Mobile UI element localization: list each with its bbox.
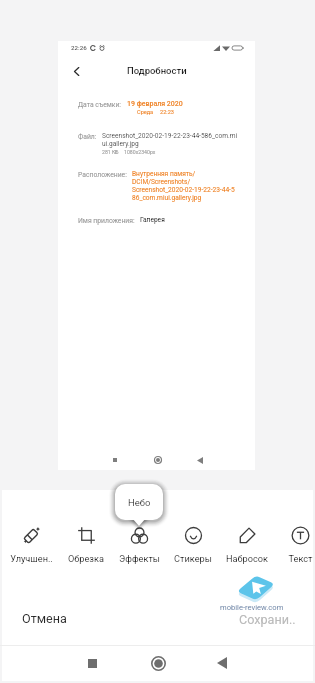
button[interactable]: Сохрани..	[229, 606, 306, 633]
button[interactable]: Назад	[193, 453, 207, 467]
button[interactable]: Обрезка	[60, 526, 112, 564]
staticText: Эффекты	[119, 553, 160, 564]
button[interactable]: Эффекты	[113, 526, 165, 564]
staticText: Файл:	[78, 133, 97, 141]
staticText: Галерея	[140, 216, 165, 224]
button[interactable]: Небо	[115, 484, 163, 520]
staticText: Внутренняя память/ DCIM/Screenshots/ Scr…	[132, 170, 238, 202]
staticText: Среда	[137, 109, 154, 116]
staticText: Имя приложения:	[78, 217, 135, 225]
staticText: 22:23	[160, 109, 174, 116]
button[interactable]: Назад	[67, 62, 86, 81]
button[interactable]: Набросок	[221, 526, 273, 564]
staticText: Отмена	[22, 611, 67, 626]
staticText: 19 февраля 2020	[127, 100, 183, 108]
staticText: mobile-review.com	[220, 603, 284, 612]
button[interactable]: Дата съемки:	[78, 101, 238, 116]
button[interactable]: Домой	[151, 453, 165, 467]
staticText: 22:26	[71, 44, 87, 51]
staticText: Подробности	[127, 65, 187, 76]
staticText: Screenshot_2020-02-19-22-23-44-586_com.m…	[102, 132, 238, 148]
button[interactable]: Улучшен..	[5, 526, 57, 564]
staticText: 1080x2340px	[124, 149, 156, 155]
button[interactable]: Недавние приложения	[76, 647, 108, 679]
button[interactable]: Текст	[274, 526, 315, 564]
staticText: Сохрани..	[239, 612, 296, 627]
staticText: Текст	[288, 553, 313, 564]
button[interactable]: Назад	[206, 647, 238, 679]
staticText: 281 КБ	[102, 149, 119, 155]
staticText: Расположение:	[78, 171, 127, 179]
staticText: Набросок	[226, 553, 268, 564]
staticText: Обрезка	[68, 553, 104, 564]
button[interactable]: Отмена	[12, 605, 77, 632]
staticText: Стикеры	[174, 553, 212, 564]
staticText: Небо	[128, 497, 151, 508]
button[interactable]: Расположение:	[78, 171, 238, 203]
button[interactable]: Стикеры	[167, 526, 219, 564]
staticText: Улучшен..	[10, 553, 53, 564]
button[interactable]: Домой	[142, 647, 174, 679]
button[interactable]: Недавние	[109, 454, 121, 466]
button[interactable]: Файл:	[78, 133, 238, 155]
staticText: Дата съемки:	[78, 101, 122, 109]
button[interactable]: Имя приложения:	[78, 217, 238, 225]
